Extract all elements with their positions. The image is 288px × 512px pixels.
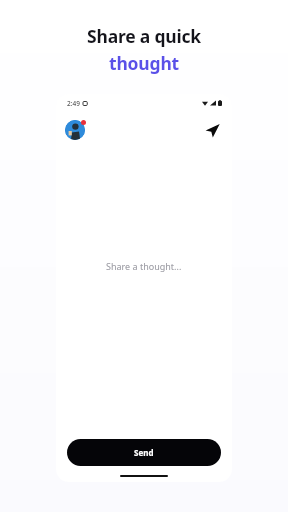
button[interactable]: Share a thought... (98, 256, 190, 276)
button[interactable]: Profile (62, 117, 88, 143)
staticText: thought (109, 51, 179, 75)
staticText: 2:49 (67, 99, 80, 108)
staticText: Send (134, 447, 154, 458)
staticText: Share a thought... (106, 260, 182, 272)
button[interactable]: Send (200, 118, 224, 142)
staticText: Share a quick (87, 24, 201, 48)
button[interactable]: Send (67, 439, 221, 466)
